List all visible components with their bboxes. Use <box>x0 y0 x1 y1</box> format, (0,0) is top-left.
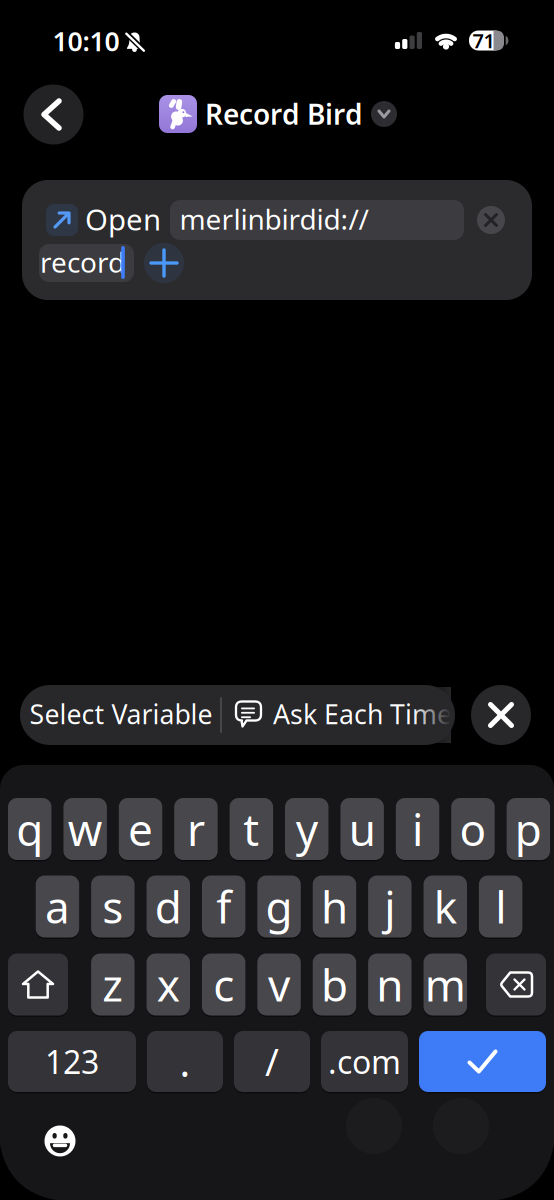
staticText: g <box>266 877 293 936</box>
button[interactable]: p <box>507 798 550 860</box>
button[interactable]: period <box>147 1031 223 1092</box>
staticText: r <box>187 800 205 858</box>
button[interactable]: Open merlinbirdid://record <box>22 180 532 300</box>
staticText: v <box>268 955 290 1014</box>
staticText: a <box>45 877 70 936</box>
button[interactable]: z <box>91 953 135 1015</box>
button[interactable]: k <box>423 875 467 937</box>
button[interactable]: g <box>257 875 301 937</box>
button[interactable]: Back <box>23 84 83 144</box>
button[interactable]: v <box>257 953 301 1015</box>
staticText: 71 <box>472 27 494 54</box>
staticText: c <box>213 955 234 1014</box>
staticText: b <box>321 955 348 1014</box>
button[interactable]: Shift <box>8 953 68 1015</box>
button[interactable]: Select Variable <box>29 684 212 744</box>
button[interactable]: Dismiss keyboard <box>471 685 531 745</box>
staticText: u <box>349 800 376 858</box>
button[interactable]: r <box>174 798 218 860</box>
button[interactable]: q <box>8 798 51 860</box>
button[interactable]: w <box>63 798 107 860</box>
button[interactable]: o <box>451 798 495 860</box>
button[interactable]: 123 <box>8 1031 136 1092</box>
staticText: j <box>384 877 395 936</box>
button[interactable]: t <box>230 798 273 860</box>
staticText: record <box>40 243 125 281</box>
staticText: / <box>265 1037 279 1086</box>
button[interactable]: e <box>119 798 162 860</box>
staticText: w <box>68 800 103 858</box>
button[interactable]: slash <box>234 1031 310 1092</box>
staticText: Select Variable <box>29 696 212 732</box>
button[interactable]: a <box>36 875 79 937</box>
staticText: Open <box>85 199 161 238</box>
button[interactable]: x <box>146 953 190 1015</box>
button[interactable]: .com <box>321 1031 408 1092</box>
staticText: l <box>495 877 506 936</box>
staticText: 123 <box>45 1040 99 1083</box>
button[interactable]: b <box>313 953 356 1015</box>
staticText: q <box>16 800 43 858</box>
staticText: n <box>376 955 403 1014</box>
staticText: Ask Each Time <box>273 696 452 732</box>
staticText: h <box>321 877 348 936</box>
button[interactable]: Ask Each Time <box>236 696 452 732</box>
button[interactable]: y <box>285 798 328 860</box>
staticText: d <box>155 877 182 936</box>
staticText: z <box>102 955 123 1014</box>
staticText: m <box>425 955 466 1014</box>
staticText: . <box>179 1035 190 1088</box>
staticText: f <box>216 877 231 936</box>
staticText: y <box>296 800 318 858</box>
button[interactable]: d <box>146 875 190 937</box>
staticText: k <box>434 877 457 936</box>
button[interactable]: i <box>396 798 439 860</box>
button[interactable]: f <box>202 875 245 937</box>
button[interactable]: Shortcut title <box>159 95 397 133</box>
staticText: t <box>243 800 259 858</box>
staticText: 10:10 <box>52 23 119 59</box>
staticText: o <box>459 800 486 858</box>
staticText: merlinbirdid:// <box>179 200 368 238</box>
button[interactable]: u <box>340 798 384 860</box>
button[interactable]: Insert variable <box>144 243 184 283</box>
button[interactable]: j <box>368 875 412 937</box>
staticText: Record Bird <box>205 95 363 133</box>
staticText: s <box>102 877 123 936</box>
button[interactable]: c <box>202 953 245 1015</box>
staticText: p <box>515 800 542 858</box>
staticText: e <box>128 800 153 858</box>
button[interactable]: l <box>479 875 522 937</box>
button[interactable]: n <box>368 953 412 1015</box>
staticText: x <box>157 955 180 1014</box>
staticText: .com <box>328 1040 401 1083</box>
button[interactable]: s <box>91 875 135 937</box>
button[interactable]: Done <box>419 1031 546 1092</box>
button[interactable]: Delete action <box>477 206 505 234</box>
staticText: i <box>412 800 423 858</box>
button[interactable]: Delete <box>486 953 546 1015</box>
button[interactable]: Emoji <box>44 1125 75 1156</box>
button[interactable]: h <box>313 875 356 937</box>
button[interactable]: m <box>423 953 467 1015</box>
